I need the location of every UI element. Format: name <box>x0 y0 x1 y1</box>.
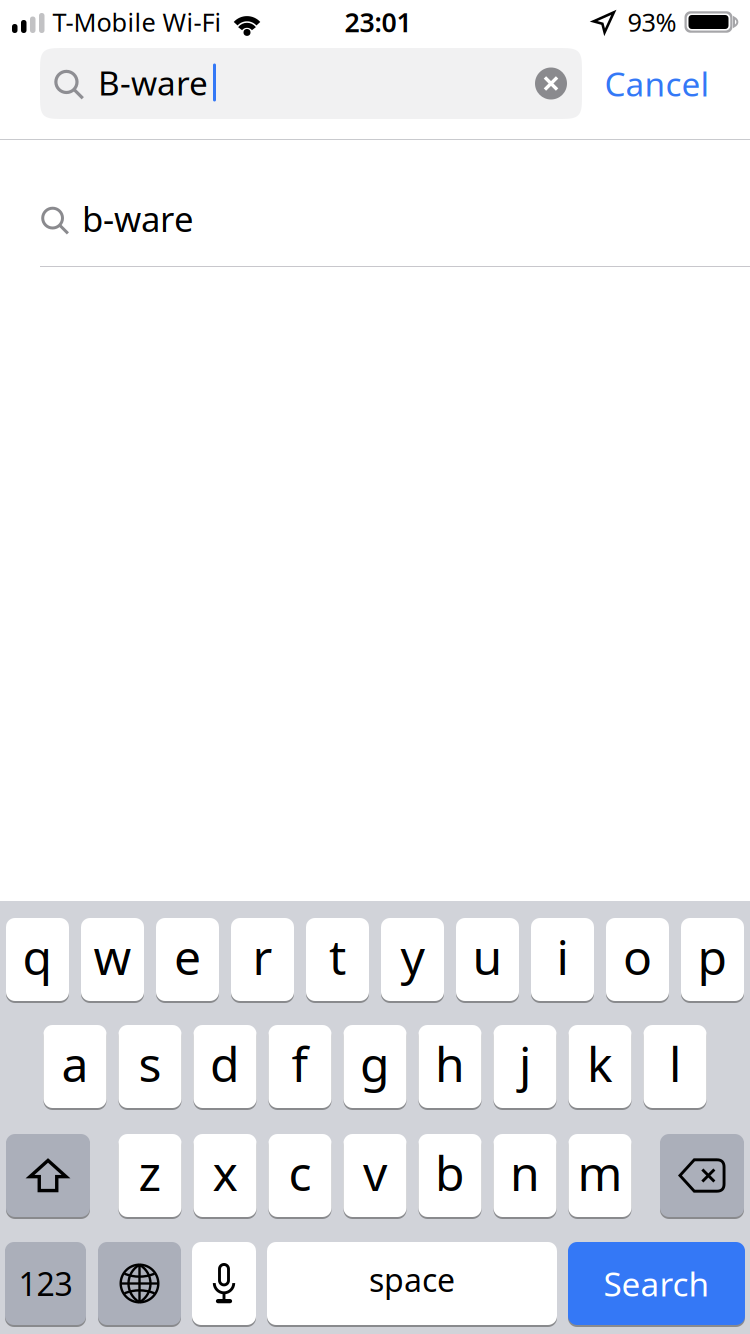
button[interactable]: Delete <box>660 1134 744 1217</box>
button[interactable]: d <box>193 1025 256 1108</box>
button[interactable]: Next keyboard <box>98 1242 181 1325</box>
staticText: d <box>210 1032 240 1095</box>
staticText: space <box>369 1258 455 1301</box>
button[interactable]: c <box>268 1134 331 1217</box>
button[interactable]: o <box>606 918 669 1001</box>
staticText: k <box>587 1032 613 1095</box>
staticText: y <box>400 925 424 988</box>
button[interactable]: Cancel <box>582 48 732 119</box>
button[interactable]: k <box>568 1025 631 1108</box>
button[interactable]: w <box>81 918 144 1001</box>
staticText: o <box>623 925 652 988</box>
button[interactable]: u <box>456 918 519 1001</box>
button[interactable]: i <box>531 918 594 1001</box>
staticText: g <box>360 1032 390 1095</box>
button[interactable]: Search <box>568 1242 745 1325</box>
button[interactable]: space <box>267 1242 557 1325</box>
staticText: r <box>252 925 272 988</box>
staticText: h <box>435 1032 465 1095</box>
staticText: 23:01 <box>344 4 411 40</box>
staticText: i <box>556 925 568 988</box>
staticText: l <box>669 1032 681 1095</box>
button[interactable]: r <box>231 918 294 1001</box>
button[interactable]: y <box>381 918 444 1001</box>
staticText: a <box>61 1032 88 1095</box>
button[interactable]: Dictate <box>192 1242 256 1325</box>
staticText: c <box>288 1141 311 1204</box>
button[interactable]: l <box>643 1025 706 1108</box>
staticText: f <box>291 1032 308 1095</box>
button[interactable]: v <box>343 1134 406 1217</box>
staticText: e <box>174 925 201 988</box>
button[interactable]: j <box>493 1025 556 1108</box>
button[interactable]: f <box>268 1025 331 1108</box>
button[interactable]: t <box>306 918 369 1001</box>
button[interactable]: b-ware <box>0 140 750 266</box>
button[interactable]: n <box>493 1134 556 1217</box>
staticText: B-ware <box>98 60 208 105</box>
staticText: j <box>519 1032 531 1095</box>
staticText: z <box>138 1141 161 1204</box>
button[interactable]: b <box>418 1134 481 1217</box>
button[interactable]: B-ware <box>40 48 582 119</box>
button[interactable]: p <box>681 918 744 1001</box>
staticText: n <box>510 1141 540 1204</box>
staticText: b <box>435 1141 465 1204</box>
staticText: w <box>93 925 131 988</box>
button[interactable]: m <box>568 1134 631 1217</box>
button[interactable]: a <box>43 1025 106 1108</box>
staticText: s <box>138 1032 161 1095</box>
staticText: 93% <box>627 5 676 39</box>
staticText: Search <box>603 1261 709 1306</box>
button[interactable]: z <box>118 1134 181 1217</box>
staticText: x <box>212 1141 237 1204</box>
button[interactable]: 123 <box>5 1242 86 1325</box>
button[interactable]: q <box>6 918 69 1001</box>
staticText: v <box>363 1141 387 1204</box>
staticText: 123 <box>18 1262 72 1305</box>
staticText: T-Mobile Wi-Fi <box>52 5 221 39</box>
button[interactable]: x <box>193 1134 256 1217</box>
staticText: t <box>329 925 346 988</box>
button[interactable]: e <box>156 918 219 1001</box>
staticText: m <box>577 1141 622 1204</box>
button[interactable]: s <box>118 1025 181 1108</box>
button[interactable]: Shift <box>6 1134 90 1217</box>
staticText: b-ware <box>82 195 194 241</box>
staticText: Cancel <box>604 61 709 106</box>
button[interactable]: g <box>343 1025 406 1108</box>
staticText: q <box>22 925 52 988</box>
button[interactable]: h <box>418 1025 481 1108</box>
staticText: u <box>472 925 502 988</box>
staticText: p <box>697 925 727 988</box>
